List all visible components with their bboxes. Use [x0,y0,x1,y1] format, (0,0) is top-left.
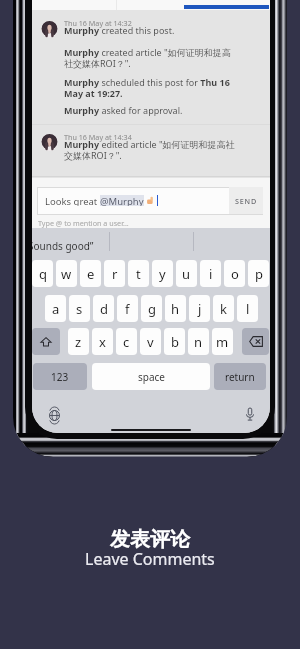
staticText: 发表评论 [110,527,190,552]
staticText: space [138,370,165,384]
staticText: Type @ to mention a user... [38,218,129,228]
button[interactable]: d [93,295,114,322]
button[interactable]: q [32,260,53,287]
staticText: l [246,300,250,318]
button[interactable]: b [164,328,185,355]
button[interactable]: a [45,295,66,322]
button[interactable]: f [117,295,138,322]
staticText: @Murphy [100,195,144,206]
staticText: h [171,300,180,318]
staticText: z [75,333,82,351]
staticText: 123 [51,370,69,384]
button[interactable]: k [213,295,234,322]
staticText: c [123,333,130,351]
button[interactable]: x [92,328,113,355]
button[interactable]: u [176,260,197,287]
button[interactable]: o [224,260,245,287]
button[interactable]: p [248,260,269,287]
button[interactable]: z [68,328,89,355]
staticText: i [209,265,213,283]
staticText: Murphy created article "如何证明和提高社交媒体ROI？"… [64,46,237,69]
button[interactable]: 123 [33,363,87,390]
staticText: s [76,300,83,318]
staticText: j [198,300,202,318]
staticText: Thu 16 May at 14:34 [64,132,132,142]
staticText: y [159,265,166,283]
staticText: o [231,265,239,283]
button[interactable]: e [80,260,101,287]
button[interactable]: t [128,260,149,287]
button[interactable]: w [56,260,77,287]
staticText: p [255,265,263,283]
staticText: f [125,300,130,318]
staticText: Murphy scheduled this post for Thu 16 Ma… [64,76,237,99]
button[interactable]: n [188,328,209,355]
button[interactable]: s [69,295,90,322]
button[interactable]: l [237,295,258,322]
staticText: Leave Comments [85,548,215,570]
button[interactable]: return [214,363,266,390]
button[interactable]: y [152,260,173,287]
staticText: k [220,300,227,318]
button[interactable] [37,187,263,215]
staticText: v [147,333,154,351]
button[interactable]: i [200,260,221,287]
button[interactable]: j [189,295,210,322]
button[interactable]: v [140,328,161,355]
button[interactable]: g [141,295,162,322]
button[interactable]: Change keyboard language [47,408,61,422]
staticText: Looks great [45,195,100,206]
staticText: m [216,333,229,351]
staticText: Murphy asked for approval. [64,104,183,116]
button[interactable]: r [104,260,125,287]
staticText: w [61,265,72,283]
staticText: b [171,333,179,351]
button[interactable]: m [212,328,233,355]
staticText: d [100,300,108,318]
staticText: Murphy edited article "如何证明和提高社交媒体ROI？". [64,138,237,161]
staticText: n [194,333,203,351]
staticText: u [182,265,191,283]
button[interactable]: h [165,295,186,322]
staticText: x [99,333,106,351]
button[interactable]: Shift [32,328,60,355]
staticText: a [52,300,60,318]
staticText: t [136,265,141,283]
staticText: g [148,300,156,318]
staticText: Thu 16 May at 14:32 [64,18,132,28]
button[interactable]: Dictation [243,407,257,421]
staticText: Sounds good” [32,239,94,253]
button[interactable]: c [116,328,137,355]
button[interactable]: space [92,363,210,390]
staticText: q [39,265,47,283]
staticText: r [112,265,118,283]
staticText: e [87,265,95,283]
button[interactable]: SEND [229,187,263,214]
staticText: SEND [235,196,257,206]
button[interactable]: Backspace [242,328,269,355]
staticText: return [225,370,255,384]
staticText: Murphy created this post. [64,24,175,36]
